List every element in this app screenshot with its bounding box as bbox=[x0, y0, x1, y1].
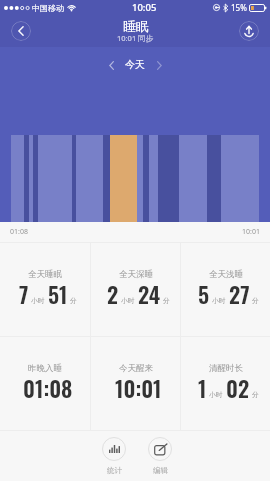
staticText: 7 bbox=[19, 278, 29, 311]
button[interactable]: Back bbox=[11, 21, 31, 41]
staticText: 统计 bbox=[107, 466, 122, 475]
staticText: 分 bbox=[70, 296, 77, 305]
staticText: 小时 bbox=[209, 390, 223, 399]
button[interactable]: Next day bbox=[152, 58, 166, 72]
staticText: 1 bbox=[198, 372, 207, 405]
staticText: 编辑 bbox=[153, 466, 168, 475]
staticText: 分 bbox=[252, 296, 259, 305]
staticText: 15% bbox=[231, 2, 247, 13]
staticText: 全天睡眠 bbox=[28, 269, 62, 280]
staticText: 01:08 bbox=[23, 372, 73, 405]
button[interactable]: 编辑 bbox=[148, 431, 172, 481]
staticText: 全天浅睡 bbox=[209, 269, 243, 280]
staticText: 中国移动 bbox=[32, 3, 64, 13]
staticText: 51 bbox=[48, 278, 68, 311]
button[interactable]: 全天睡眠 bbox=[0, 243, 90, 336]
staticText: 2 bbox=[107, 278, 119, 311]
button[interactable]: Sync bbox=[239, 21, 259, 41]
button[interactable]: 全天深睡 bbox=[91, 243, 180, 336]
button[interactable]: 清醒时长 bbox=[181, 337, 270, 430]
staticText: 小时 bbox=[212, 296, 226, 305]
staticText: 10:01 同步 bbox=[117, 33, 154, 43]
staticText: 小时 bbox=[121, 296, 135, 305]
staticText: 清醒时长 bbox=[209, 363, 243, 374]
staticText: 27 bbox=[229, 278, 250, 311]
staticText: 昨晚入睡 bbox=[28, 363, 62, 374]
button[interactable]: 全天浅睡 bbox=[181, 243, 270, 336]
button[interactable]: Previous day bbox=[104, 58, 118, 72]
button[interactable]: 统计 bbox=[102, 431, 126, 481]
staticText: 全天深睡 bbox=[119, 269, 153, 280]
staticText: 02 bbox=[226, 372, 250, 405]
staticText: 分 bbox=[252, 390, 259, 399]
staticText: 01:08 bbox=[10, 227, 28, 237]
staticText: 分 bbox=[163, 296, 170, 305]
staticText: 10:01 bbox=[242, 227, 260, 237]
staticText: 5 bbox=[198, 278, 210, 311]
staticText: 10:01 bbox=[115, 372, 162, 405]
staticText: 今天醒来 bbox=[119, 363, 153, 374]
staticText: 24 bbox=[138, 278, 161, 311]
staticText: 睡眠 bbox=[123, 18, 149, 34]
button[interactable]: 今天醒来 bbox=[91, 337, 180, 430]
button[interactable]: 昨晚入睡 bbox=[0, 337, 90, 430]
staticText: 小时 bbox=[31, 296, 45, 305]
button[interactable]: 今天 bbox=[118, 58, 152, 71]
staticText: 今天 bbox=[125, 58, 145, 71]
staticText: 10:05 bbox=[132, 1, 157, 14]
